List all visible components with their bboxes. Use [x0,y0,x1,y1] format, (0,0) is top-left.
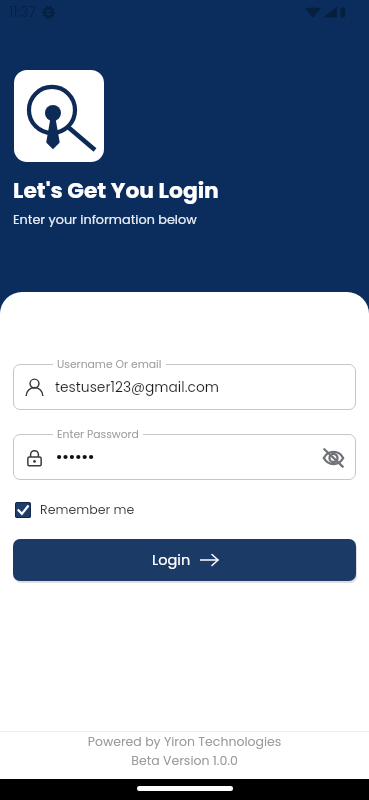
button[interactable]: Show password [320,444,346,470]
button[interactable]: testuser123@gmail.com [13,364,356,410]
staticText: Login [152,550,191,570]
staticText: 11:37 [9,3,36,22]
staticText: Username Or email [57,357,162,372]
staticText: testuser123@gmail.com [55,378,219,397]
button[interactable]: Show password [13,434,356,480]
staticText: Powered by Yiron Technologies [0,733,369,750]
staticText: Let's Get You Login [13,175,219,206]
staticText: Beta Version 1.0.0 [0,752,369,769]
staticText: Enter your information below [13,211,197,229]
staticText: Remember me [40,501,135,519]
staticText: Enter Password [57,427,139,442]
button[interactable]: Login [13,539,356,581]
button[interactable]: Remember me [15,501,135,519]
